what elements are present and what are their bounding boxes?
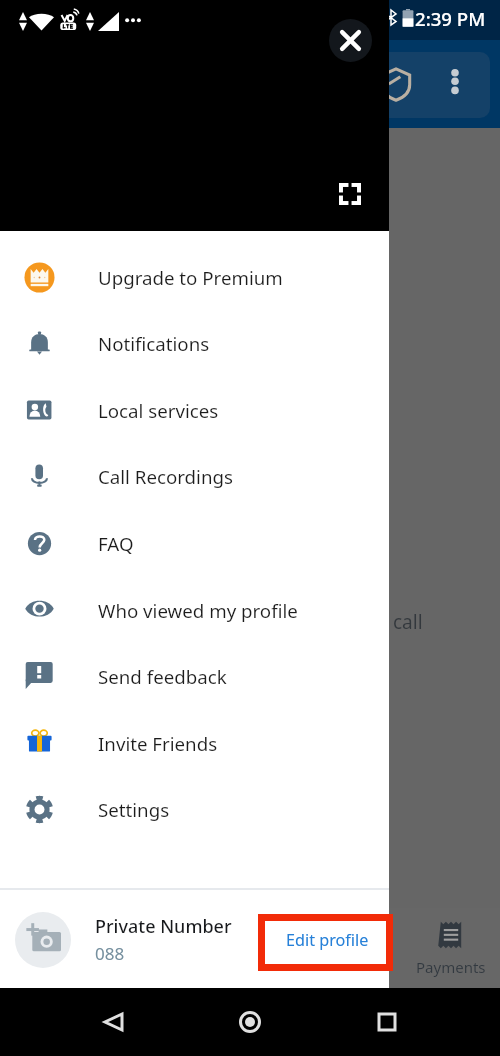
button[interactable]: Edit profile	[264, 915, 391, 965]
staticText: Private Number	[95, 914, 232, 939]
button[interactable]: Recents	[363, 998, 411, 1046]
staticText: Call Recordings	[98, 464, 233, 489]
button[interactable]: Back	[89, 998, 137, 1046]
button[interactable]: More options	[435, 60, 475, 100]
staticText: 2:39 PM	[415, 6, 486, 31]
button[interactable]: Upgrade to Premium	[0, 244, 389, 310]
staticText: call	[393, 609, 423, 635]
staticText: Upgrade to Premium	[98, 265, 283, 290]
button[interactable]: Notifications	[0, 310, 389, 376]
button[interactable]: Close	[329, 19, 372, 62]
button[interactable]: Fullscreen	[330, 174, 370, 214]
staticText: Local services	[98, 398, 219, 423]
staticText: Send feedback	[98, 664, 227, 689]
staticText: Invite Friends	[98, 731, 218, 756]
button[interactable]: More options	[296, 52, 490, 118]
staticText: Who viewed my profile	[98, 598, 298, 623]
staticText: FAQ	[98, 531, 134, 556]
button[interactable]: Local services	[0, 377, 389, 443]
staticText: Payments	[416, 957, 486, 977]
staticText: Settings	[98, 797, 170, 822]
staticText: 088	[95, 942, 125, 965]
button[interactable]: Payments	[413, 908, 489, 988]
button[interactable]: Call Recordings	[0, 443, 389, 509]
staticText: Edit profile	[286, 929, 369, 951]
button[interactable]: Send feedback	[0, 643, 389, 709]
staticText: Notifications	[98, 331, 210, 356]
button[interactable]: Home	[226, 998, 274, 1046]
button[interactable]: Invite Friends	[0, 710, 389, 776]
button[interactable]: FAQ	[0, 510, 389, 576]
button[interactable]: Private Number	[0, 890, 389, 989]
button[interactable]: Settings	[0, 776, 389, 842]
button[interactable]: Who viewed my profile	[0, 577, 389, 643]
